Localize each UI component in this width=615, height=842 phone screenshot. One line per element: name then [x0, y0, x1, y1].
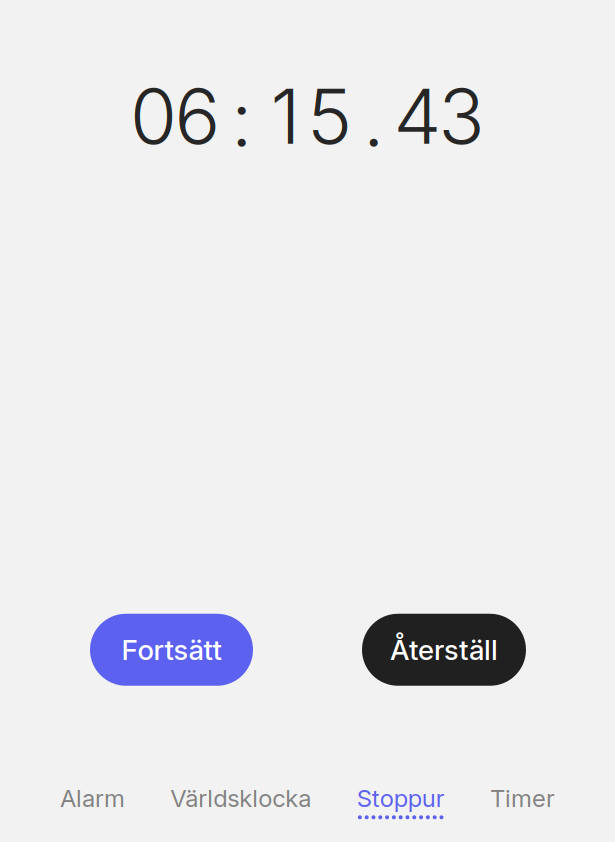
staticText: Världsklocka — [170, 784, 311, 813]
staticText: 1 — [270, 70, 300, 162]
staticText: Timer — [490, 784, 555, 813]
staticText: Återställ — [390, 633, 498, 667]
staticText: 6 — [174, 70, 220, 162]
staticText: 5 — [307, 70, 352, 162]
staticText: Fortsätt — [121, 633, 221, 667]
button[interactable]: Stoppur — [345, 775, 457, 828]
staticText: 4 — [393, 70, 441, 162]
staticText: Stoppur — [357, 784, 445, 813]
button[interactable]: Timer — [478, 775, 567, 828]
staticText: Alarm — [60, 784, 125, 813]
button[interactable]: Alarm — [48, 775, 137, 828]
staticText: : — [231, 73, 252, 165]
staticText: 0 — [130, 70, 177, 162]
button[interactable]: Återställ — [362, 614, 526, 686]
button[interactable]: Fortsätt — [90, 614, 253, 686]
staticText: . — [363, 73, 384, 165]
button[interactable]: Världsklocka — [158, 775, 323, 828]
staticText: 3 — [438, 70, 484, 162]
